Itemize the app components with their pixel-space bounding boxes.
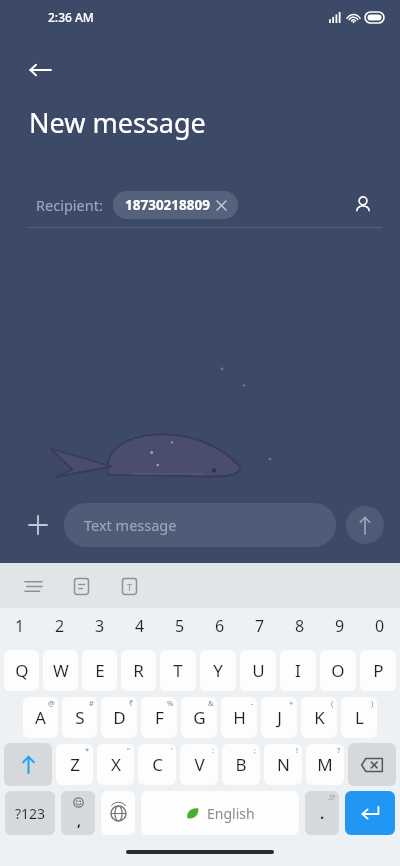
button[interactable]: Backspace — [348, 743, 396, 786]
button[interactable]: Emoji and comma — [61, 791, 95, 835]
staticText: - — [251, 698, 254, 708]
button[interactable]: W — [43, 650, 78, 691]
button[interactable]: Clipboard — [66, 571, 96, 601]
staticText: " — [127, 745, 131, 755]
button[interactable]: 8 — [280, 608, 320, 644]
button[interactable]: Attach — [16, 503, 60, 547]
staticText: U — [252, 659, 265, 682]
staticText: M — [317, 753, 333, 776]
staticText: ' — [171, 745, 173, 755]
button[interactable]: Menu — [18, 571, 48, 601]
staticText: A — [35, 706, 46, 729]
staticText: ) — [371, 698, 374, 708]
button[interactable]: Period — [305, 791, 339, 835]
staticText: 4 — [135, 615, 145, 637]
staticText: L — [355, 706, 364, 729]
staticText: N — [277, 753, 290, 776]
button[interactable]: 4 — [120, 608, 160, 644]
button[interactable]: 0 — [360, 608, 400, 644]
button[interactable]: Send — [346, 506, 384, 544]
staticText: K — [314, 706, 325, 729]
staticText: G — [193, 706, 206, 729]
staticText: 3 — [95, 615, 105, 637]
button[interactable]: Enter — [345, 791, 395, 835]
button[interactable]: & — [181, 697, 217, 738]
button[interactable]: U — [240, 650, 276, 691]
button[interactable]: 5 — [160, 608, 200, 644]
button[interactable]: Y — [200, 650, 236, 691]
button[interactable]: Add contact — [344, 186, 382, 224]
button[interactable]: 9 — [320, 608, 360, 644]
staticText: Z — [70, 753, 80, 776]
staticText: : — [212, 745, 215, 755]
button[interactable]: Q — [4, 650, 39, 691]
button[interactable]: # — [62, 697, 97, 738]
staticText: 5 — [175, 615, 185, 637]
staticText: Q — [15, 659, 29, 682]
staticText: % — [167, 698, 174, 708]
staticText: English — [207, 804, 255, 823]
button[interactable]: - — [221, 697, 257, 738]
staticText: T — [127, 581, 133, 593]
button[interactable]: : — [180, 744, 218, 785]
button[interactable]: ₹ — [101, 697, 137, 738]
staticText: W — [53, 659, 69, 682]
staticText: R — [133, 659, 144, 682]
staticText: S — [75, 706, 85, 729]
staticText: Y — [213, 659, 223, 682]
staticText: O — [331, 659, 345, 682]
staticText: + — [289, 698, 294, 708]
button[interactable]: 2 — [40, 608, 80, 644]
button[interactable]: P — [360, 650, 396, 691]
button[interactable]: Back — [18, 48, 62, 92]
staticText: * — [85, 745, 90, 755]
button[interactable]: @ — [23, 697, 58, 738]
button[interactable]: + — [261, 697, 297, 738]
staticText: ? — [337, 745, 341, 755]
button[interactable]: I — [280, 650, 316, 691]
staticText: 6 — [215, 615, 225, 637]
staticText: D — [113, 706, 126, 729]
staticText: 2:36 AM — [48, 9, 94, 25]
staticText: C — [152, 753, 163, 776]
button[interactable]: T — [160, 650, 196, 691]
button[interactable]: Text style — [114, 571, 144, 601]
button[interactable]: " — [97, 744, 134, 785]
button[interactable]: R — [121, 650, 156, 691]
button[interactable]: Text message — [64, 503, 336, 547]
staticText: Recipient: — [36, 195, 103, 215]
staticText: 18730218809 — [125, 196, 210, 214]
button[interactable]: Change language — [101, 791, 135, 835]
button[interactable]: ) — [341, 697, 377, 738]
staticText: F — [155, 706, 164, 729]
button[interactable]: ! — [264, 744, 302, 785]
button[interactable]: % — [141, 697, 177, 738]
staticText: I — [295, 659, 301, 682]
button[interactable]: 1 — [0, 608, 40, 644]
staticText: New message — [29, 104, 206, 141]
staticText: 9 — [335, 615, 345, 637]
button[interactable]: 7 — [240, 608, 280, 644]
button[interactable]: English — [141, 791, 299, 835]
staticText: # — [89, 698, 94, 708]
button[interactable]: ( — [301, 697, 337, 738]
button[interactable]: * — [56, 744, 93, 785]
button[interactable]: E — [82, 650, 117, 691]
button[interactable]: 3 — [80, 608, 120, 644]
staticText: Text message — [84, 515, 177, 535]
button[interactable]: O — [320, 650, 356, 691]
button[interactable]: ; — [222, 744, 260, 785]
staticText: & — [208, 698, 214, 708]
staticText: ; — [254, 745, 257, 755]
button[interactable]: 18730218809 — [113, 191, 238, 219]
button[interactable]: Shift — [4, 743, 52, 786]
staticText: E — [95, 659, 105, 682]
staticText: ! — [296, 745, 299, 755]
staticText: 8 — [295, 615, 305, 637]
button[interactable]: 6 — [200, 608, 240, 644]
button[interactable]: ?123 — [5, 791, 55, 835]
button[interactable]: ' — [138, 744, 176, 785]
staticText: P — [373, 659, 384, 682]
button[interactable]: ? — [306, 744, 344, 785]
staticText: 1 — [15, 615, 25, 637]
